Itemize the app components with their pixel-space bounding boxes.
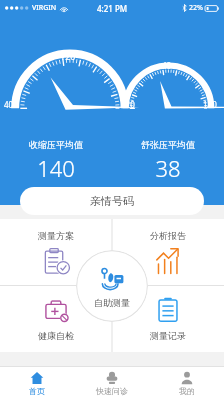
button[interactable]: 首页 — [0, 367, 74, 400]
button[interactable]: 健康自检 — [0, 285, 112, 352]
staticText: 40 — [162, 60, 172, 71]
button[interactable]: 快速问诊 — [74, 367, 149, 400]
staticText: 测量记录 — [150, 330, 186, 341]
staticText: 首页 — [29, 386, 45, 396]
staticText: 我的 — [179, 386, 195, 396]
staticText: 22% — [189, 3, 203, 13]
button[interactable]: 测量方案 — [0, 219, 112, 285]
staticText: 140 — [203, 99, 217, 110]
staticText: 舒张压平均值 — [141, 139, 195, 150]
staticText: VIRGIN — [32, 3, 57, 13]
staticText: 140 — [37, 153, 75, 183]
staticText: 40 — [4, 99, 14, 110]
staticText: 快速问诊 — [96, 386, 128, 396]
staticText: 220 — [121, 99, 135, 110]
staticText: 分析报告 — [150, 230, 186, 241]
button[interactable]: 分析报告 — [112, 219, 224, 285]
staticText: 38 — [155, 153, 181, 183]
button[interactable]: 我的 — [149, 367, 224, 400]
button[interactable]: 测量记录 — [112, 285, 224, 352]
staticText: 测量方案 — [38, 230, 74, 241]
staticText: 亲情号码 — [90, 194, 134, 208]
staticText: 120 — [60, 50, 76, 62]
staticText: 健康自检 — [38, 330, 74, 341]
staticText: 收缩压平均值 — [29, 139, 83, 150]
staticText: 自助测量 — [94, 297, 130, 308]
staticText: 4:21 PM — [97, 3, 128, 14]
button[interactable]: 自助测量 — [76, 250, 148, 322]
button[interactable]: 亲情号码 — [20, 187, 204, 215]
